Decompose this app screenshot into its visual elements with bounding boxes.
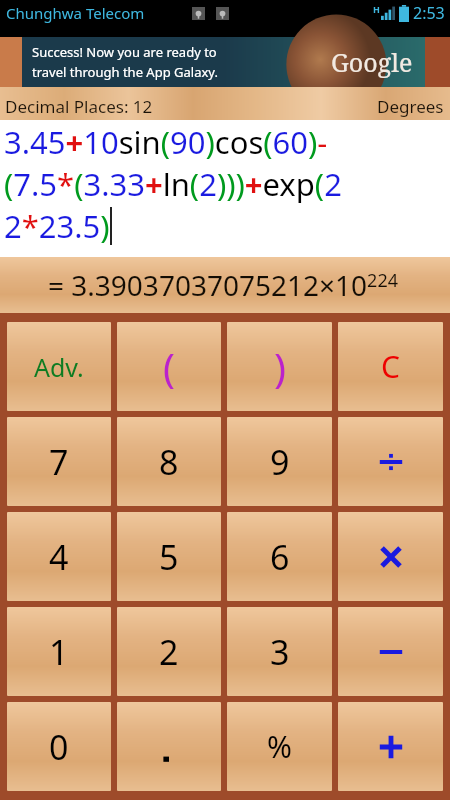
staticText: )	[274, 340, 286, 394]
button[interactable]: Subtract	[338, 607, 443, 696]
button[interactable]: Adv.	[7, 322, 111, 411]
button[interactable]: Decimal point	[117, 702, 221, 791]
staticText: 6	[270, 534, 290, 580]
button[interactable]: 2	[117, 607, 221, 696]
staticText: 1	[49, 629, 69, 675]
staticText: Adv.	[34, 350, 84, 384]
staticText: 2	[159, 629, 179, 675]
staticText: 8	[159, 439, 179, 485]
staticText: Google	[331, 45, 413, 79]
button[interactable]: 1	[7, 607, 111, 696]
staticText: C	[381, 346, 400, 387]
staticText: %	[267, 726, 292, 767]
staticText: 5	[159, 534, 179, 580]
staticText: (7.5*(3.33+ln(2)))+exp(2	[4, 163, 342, 205]
button[interactable]: %	[227, 702, 332, 791]
button[interactable]: 9	[227, 417, 332, 506]
staticText: Decimal Places: 12	[5, 95, 153, 118]
staticText: (	[163, 340, 175, 394]
staticText: 9	[270, 439, 290, 485]
button[interactable]: 5	[117, 512, 221, 601]
staticText: travel through the App Galaxy.	[32, 63, 218, 81]
staticText: 4	[49, 534, 69, 580]
button[interactable]: 6	[227, 512, 332, 601]
button[interactable]: Divide	[338, 417, 443, 506]
staticText: 7	[49, 439, 69, 485]
button[interactable]: 4	[7, 512, 111, 601]
button[interactable]: )	[227, 322, 332, 411]
staticText: 2:53	[413, 2, 445, 24]
staticText: Degrees	[377, 95, 444, 118]
staticText: 2*23.5)	[4, 205, 110, 247]
button[interactable]: Multiply	[338, 512, 443, 601]
staticText: = 3.39037037075212×10224	[48, 266, 398, 304]
button[interactable]: 0	[7, 702, 111, 791]
button[interactable]: Add	[338, 702, 443, 791]
button[interactable]: C	[338, 322, 443, 411]
staticText: Success! Now you are ready to	[32, 43, 217, 61]
staticText: H	[373, 3, 380, 15]
button[interactable]: 3	[227, 607, 332, 696]
staticText: 0	[49, 724, 69, 770]
staticText: Chunghwa Telecom	[6, 3, 145, 23]
button[interactable]: (	[117, 322, 221, 411]
staticText: 3	[270, 629, 290, 675]
button[interactable]: 3.45+10sin(90)cos(60)-	[0, 120, 450, 257]
button[interactable]: 8	[117, 417, 221, 506]
staticText: 3.45+10sin(90)cos(60)-	[4, 121, 328, 163]
button[interactable]: 7	[7, 417, 111, 506]
